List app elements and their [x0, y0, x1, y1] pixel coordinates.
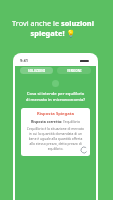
staticText: L'equilibrio è la situazione di mercato …: [26, 126, 85, 151]
staticText: VERSIONI: [67, 69, 82, 73]
button[interactable]: Ricarica: [80, 146, 88, 154]
button[interactable]: SOLUZIONI: [20, 67, 53, 74]
staticText: Cosa si intende per equilibrio di mercat…: [22, 91, 89, 102]
staticText: SOLUZIONI: [28, 69, 45, 73]
staticText: Risposta Spiegata: [37, 111, 75, 117]
staticText: 9:41: [20, 58, 28, 63]
button[interactable]: VERSIONI: [57, 67, 91, 74]
staticText: Risposta corretta: l'equilibrio: [31, 119, 81, 124]
staticText: Trovi anche le soluzioni spiegate! 💡: [1, 18, 105, 38]
